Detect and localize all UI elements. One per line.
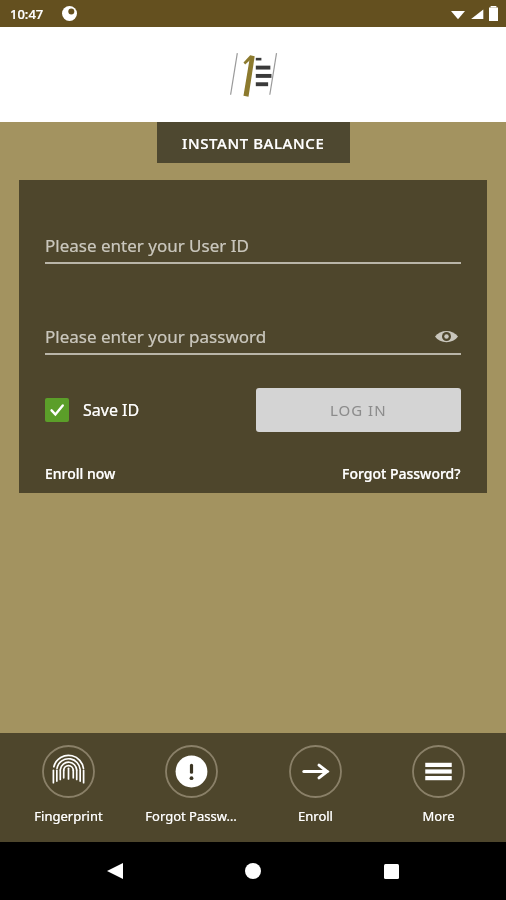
staticText: Please enter your User ID [45, 234, 249, 257]
button[interactable]: LOG IN [256, 388, 461, 432]
staticText: Forgot Password? [342, 464, 461, 483]
button[interactable]: Please enter your password [45, 319, 461, 353]
staticText: Save ID [83, 399, 140, 421]
staticText: Fingerprint [34, 807, 103, 825]
button[interactable]: Forgot Passw… [136, 733, 246, 825]
button[interactable]: Enroll now [45, 464, 116, 483]
staticText: INSTANT BALANCE [182, 133, 325, 153]
button[interactable]: INSTANT BALANCE [157, 122, 350, 163]
button[interactable]: More [383, 733, 493, 825]
button[interactable]: Recents [368, 848, 414, 894]
staticText: Enroll [298, 807, 333, 825]
staticText: Please enter your password [45, 325, 267, 348]
button[interactable]: Show password [431, 321, 461, 351]
staticText: LOG IN [330, 400, 387, 420]
button[interactable]: Enroll [260, 733, 370, 825]
staticText: Forgot Passw… [145, 807, 237, 825]
staticText: 10:47 [10, 5, 44, 23]
button[interactable]: Forgot Password? [342, 464, 461, 483]
button[interactable]: Save ID [45, 398, 140, 422]
button[interactable]: Fingerprint [13, 733, 123, 825]
button[interactable]: Please enter your User ID [45, 228, 461, 262]
button[interactable]: Back [92, 848, 138, 894]
staticText: More [422, 807, 455, 825]
staticText: Enroll now [45, 464, 116, 483]
button[interactable]: Home [230, 848, 276, 894]
